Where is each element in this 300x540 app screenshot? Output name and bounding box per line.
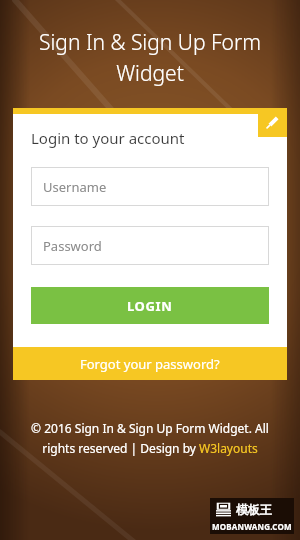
staticText: Login to your account: [31, 128, 185, 148]
button[interactable]: LOGIN: [31, 287, 269, 324]
staticText: Forgot your password?: [80, 355, 220, 373]
button[interactable]: Username: [31, 167, 269, 206]
staticText: MOBANWANG.COM: [212, 521, 292, 532]
button[interactable]: Password: [31, 226, 269, 265]
staticText: 模板王: [236, 502, 272, 517]
button[interactable]: Edit: [258, 108, 287, 137]
staticText: Sign In & Sign Up Form Widget: [20, 28, 280, 87]
button[interactable]: Forgot your password?: [13, 347, 287, 380]
staticText: Username: [43, 178, 107, 196]
staticText: © 2016 Sign In & Sign Up Form Widget. Al…: [14, 420, 286, 457]
staticText: Password: [43, 237, 102, 255]
staticText: LOGIN: [127, 297, 173, 315]
